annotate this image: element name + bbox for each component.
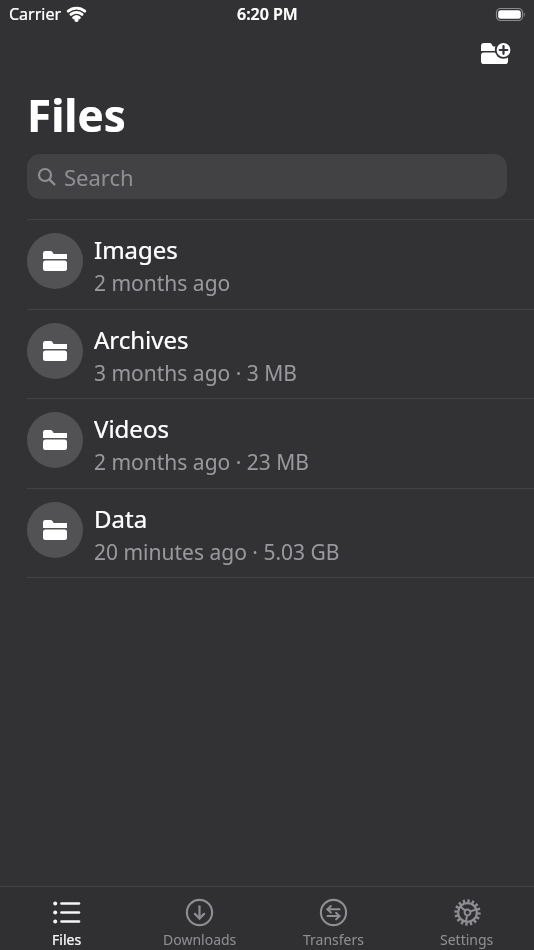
staticText: Files xyxy=(27,85,126,145)
button[interactable]: Search xyxy=(27,154,507,199)
staticText: Archives xyxy=(94,323,189,356)
staticText: Settings xyxy=(440,930,494,949)
button[interactable]: Files xyxy=(0,887,133,950)
staticText: Files xyxy=(52,930,82,949)
staticText: Data xyxy=(94,502,148,535)
button[interactable]: Downloads xyxy=(133,887,266,950)
button[interactable]: Archives xyxy=(0,310,534,398)
button[interactable] xyxy=(481,40,514,66)
button[interactable]: Settings xyxy=(400,887,534,950)
staticText: Carrier xyxy=(9,3,62,25)
staticText: Search xyxy=(64,162,134,192)
staticText: Videos xyxy=(94,412,169,445)
staticText: 6:20 PM xyxy=(237,3,298,25)
button[interactable]: Data xyxy=(0,489,534,577)
staticText: 3 months ago · 3 MB xyxy=(94,359,297,388)
button[interactable]: Videos xyxy=(0,399,534,488)
staticText: 2 months ago · 23 MB xyxy=(94,448,309,477)
staticText: 20 minutes ago · 5.03 GB xyxy=(94,538,340,567)
staticText: Downloads xyxy=(163,930,237,949)
staticText: 2 months ago xyxy=(94,269,231,298)
button[interactable]: Images xyxy=(0,220,534,309)
staticText: Images xyxy=(94,233,178,266)
button[interactable]: Transfers xyxy=(266,887,400,950)
staticText: Transfers xyxy=(303,930,364,949)
